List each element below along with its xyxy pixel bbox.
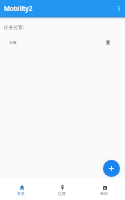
- button[interactable]: Add: [103, 160, 120, 177]
- staticText: 首页: [17, 191, 25, 196]
- staticText: 位置: [58, 191, 66, 196]
- button[interactable]: Delete: [101, 36, 114, 49]
- button[interactable]: 天脑: [0, 36, 125, 49]
- staticText: 天脑: [9, 40, 17, 45]
- staticText: Mobility2: [4, 4, 33, 13]
- button[interactable]: 位置: [41, 178, 83, 200]
- button[interactable]: 首页: [0, 178, 41, 200]
- button[interactable]: More options: [112, 0, 125, 16]
- staticText: 我的: [100, 191, 108, 196]
- button[interactable]: 我的: [83, 178, 125, 200]
- staticText: 任务位置:: [4, 24, 25, 30]
